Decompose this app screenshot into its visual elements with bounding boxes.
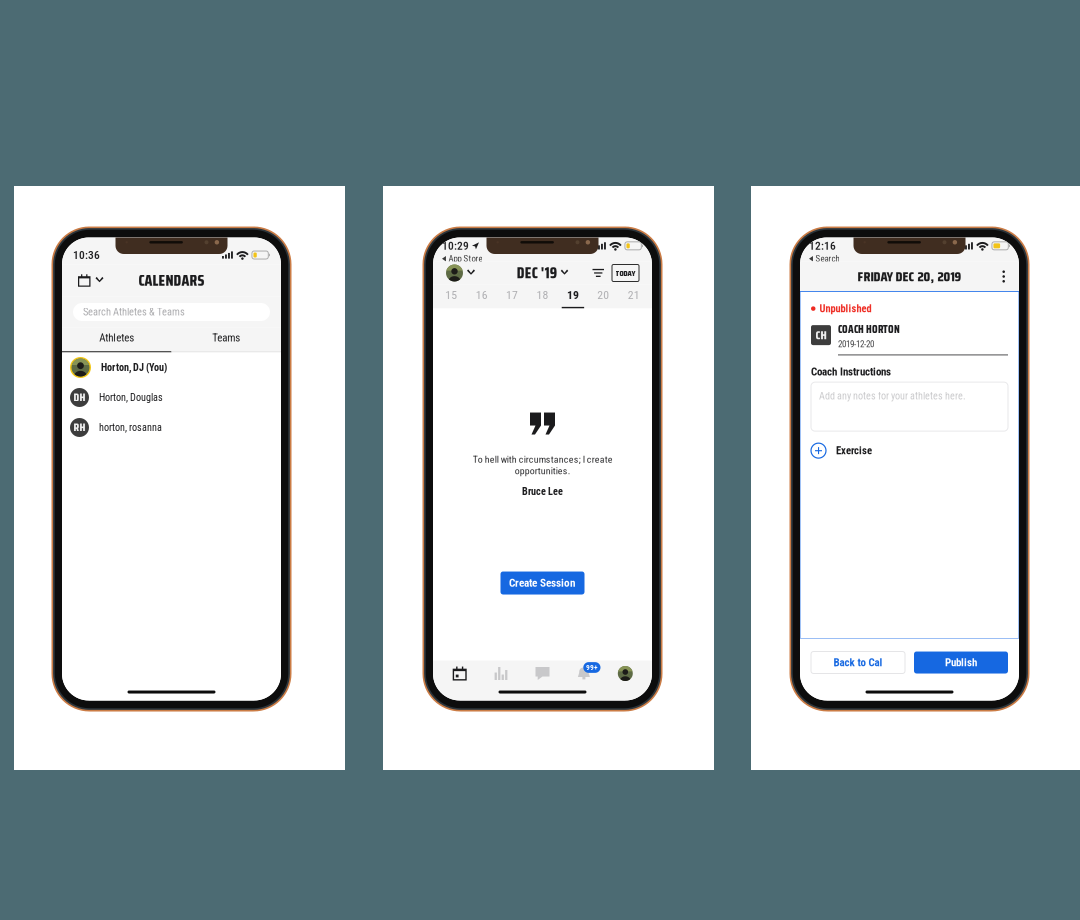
staticText: 18 <box>536 288 548 302</box>
staticText: 10:29 <box>442 239 469 252</box>
staticText: Search Athletes & Teams <box>83 306 185 318</box>
staticText: Publish <box>945 656 977 669</box>
button[interactable]: Athletes <box>62 327 171 352</box>
button[interactable]: Choose calendar <box>75 268 106 293</box>
staticText: Create Session <box>509 576 576 589</box>
button[interactable]: Calendar <box>439 660 480 686</box>
staticText: FRIDAY DEC 20, 2019 <box>857 266 961 287</box>
staticText: Horton, Douglas <box>99 392 163 403</box>
button[interactable]: 18 <box>527 284 558 308</box>
button[interactable]: Filter <box>592 265 604 281</box>
staticText: 20 <box>597 288 609 302</box>
button[interactable]: DEC '19 <box>517 261 568 285</box>
staticText: Bruce Lee <box>522 486 563 497</box>
button[interactable]: TODAY <box>612 264 639 281</box>
staticText: Search <box>815 254 839 264</box>
button[interactable]: Teams <box>171 327 281 352</box>
button[interactable]: Profile <box>446 264 475 281</box>
staticText: To hell with circumstances; I create opp… <box>472 453 612 477</box>
staticText: 99+ <box>586 663 598 672</box>
button[interactable]: Messages <box>522 660 563 686</box>
button[interactable]: Horton, DJ (You) <box>62 352 281 382</box>
staticText: TODAY <box>615 266 635 279</box>
button[interactable]: Back to Cal <box>811 651 905 673</box>
staticText: DH <box>73 388 85 406</box>
button[interactable]: Profile <box>605 660 646 686</box>
button[interactable]: Stats <box>480 660 522 686</box>
staticText: Exercise <box>836 444 872 457</box>
button[interactable]: Notifications <box>563 660 605 686</box>
staticText: RH <box>73 418 85 436</box>
staticText: DEC '19 <box>517 261 557 285</box>
button[interactable]: 16 <box>466 284 497 308</box>
staticText: 10:36 <box>73 248 100 262</box>
button[interactable]: Create Session <box>500 571 584 594</box>
staticText: COACH HORTON <box>838 321 900 338</box>
button[interactable]: RH <box>62 412 281 442</box>
staticText: Coach Instructions <box>811 365 891 378</box>
staticText: Horton, DJ (You) <box>101 362 167 373</box>
staticText: CH <box>815 326 826 345</box>
staticText: 17 <box>506 288 518 302</box>
button[interactable]: 21 <box>619 284 649 308</box>
staticText: Back to Cal <box>833 656 882 669</box>
button[interactable]: 20 <box>588 284 618 308</box>
button[interactable]: 19 <box>558 284 588 308</box>
staticText: 15 <box>445 288 457 302</box>
button[interactable]: DH <box>62 382 281 412</box>
staticText: horton, rosanna <box>99 422 162 433</box>
staticText: Add any notes for your athletes here. <box>819 390 966 402</box>
staticText: 12:16 <box>809 239 836 252</box>
staticText: App Store <box>448 254 482 264</box>
staticText: 21 <box>628 288 640 302</box>
staticText: Athletes <box>99 331 134 344</box>
staticText: 19 <box>567 288 579 302</box>
staticText: CALENDARS <box>138 268 204 292</box>
staticText: Teams <box>212 331 240 344</box>
staticText: 16 <box>476 288 488 302</box>
button[interactable]: More options <box>996 265 1011 288</box>
button[interactable]: 15 <box>436 284 466 308</box>
staticText: 2019-12-20 <box>838 339 874 349</box>
button[interactable]: Add exercise <box>811 443 826 458</box>
staticText: Unpublished <box>819 302 871 315</box>
button[interactable]: 17 <box>497 284 527 308</box>
button[interactable]: Publish <box>914 651 1008 673</box>
